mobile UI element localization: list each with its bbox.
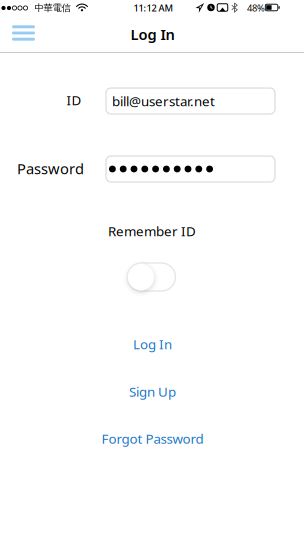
staticText: 中華電信 (34, 2, 70, 14)
staticText: Log In (133, 335, 172, 353)
button[interactable]: Menu (12, 25, 35, 41)
button[interactable]: Sign Up (129, 383, 176, 400)
staticText: 48% (247, 2, 265, 14)
staticText: 11:12 AM (133, 2, 173, 14)
staticText: Password (17, 159, 84, 178)
staticText: Log In (130, 25, 174, 44)
button[interactable]: Remember ID (127, 263, 175, 291)
staticText: bill@userstar.net (112, 92, 215, 110)
button[interactable]: bill@userstar.net (106, 88, 275, 114)
staticText: Remember ID (108, 222, 196, 240)
button[interactable]: Forgot Password (101, 430, 203, 447)
button[interactable]: Log In (133, 335, 172, 353)
button[interactable] (106, 156, 275, 182)
staticText: Sign Up (129, 383, 176, 400)
staticText: ID (66, 91, 81, 109)
staticText: Forgot Password (101, 430, 203, 447)
